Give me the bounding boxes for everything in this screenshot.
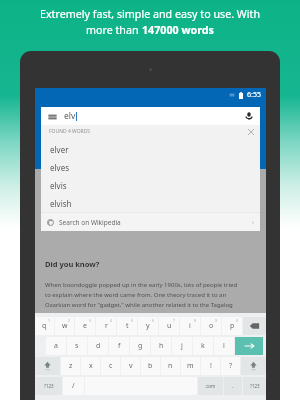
button[interactable]: g [130, 337, 150, 355]
button[interactable]: u [159, 317, 179, 335]
staticText: to explain where the word came from. One… [45, 291, 227, 299]
staticText: elvis [50, 180, 67, 191]
button[interactable]: h [151, 337, 171, 355]
button[interactable]: t [117, 317, 137, 335]
button[interactable]: / [63, 377, 84, 395]
staticText: elves [50, 162, 69, 173]
button[interactable]: z [61, 357, 80, 375]
button[interactable]: o [201, 317, 221, 335]
staticText: 8 [194, 318, 197, 323]
staticText: j [181, 341, 183, 351]
staticText: 6 [152, 318, 155, 323]
staticText: Ozarkian word for "gadget," while anothe… [45, 301, 233, 309]
button[interactable]: elves [41, 158, 260, 176]
staticText: a [54, 341, 58, 351]
button[interactable]: p [222, 317, 242, 335]
staticText: s [75, 341, 79, 351]
button[interactable]: Voice search [244, 111, 254, 121]
button[interactable]: v [121, 357, 140, 375]
button[interactable]: m [181, 357, 200, 375]
button[interactable]: k [193, 337, 213, 355]
staticText: 0 [236, 318, 239, 323]
button[interactable]: i [180, 317, 200, 335]
staticText: ?123 [250, 383, 260, 389]
button[interactable]: Shift [35, 357, 60, 375]
button[interactable]: ?123 [35, 377, 62, 395]
staticText: d [96, 341, 101, 351]
button[interactable]: q [35, 317, 54, 335]
staticText: i [189, 321, 191, 331]
button[interactable]: Backspace [243, 317, 266, 335]
staticText: Search on Wikipedia [59, 218, 121, 227]
button[interactable]: Search on Wikipedia [41, 213, 260, 231]
staticText: FOUND 4 WORDS [49, 128, 91, 135]
staticText: b [148, 361, 153, 371]
staticText: p [230, 321, 235, 331]
button[interactable]: b [141, 357, 160, 375]
staticText: k [201, 341, 205, 351]
staticText: u [167, 321, 172, 331]
button[interactable]: w [55, 317, 74, 335]
button[interactable]: Enter [235, 337, 263, 355]
staticText: r [105, 321, 108, 331]
staticText: .com [205, 383, 216, 389]
staticText: ? [229, 361, 233, 371]
staticText: elver [50, 144, 69, 155]
staticText: f [118, 341, 121, 351]
button[interactable]: a [46, 337, 66, 355]
staticText: ?123 [44, 383, 54, 389]
staticText: x [89, 361, 93, 371]
button[interactable]: ? [221, 357, 240, 375]
staticText: Extremely fast, simple and easy to use. … [40, 7, 260, 22]
button[interactable]: y [138, 317, 158, 335]
staticText: q [42, 321, 47, 331]
staticText: › [252, 218, 254, 226]
staticText: c [109, 361, 113, 371]
staticText: w [62, 321, 68, 331]
staticText: 2 [68, 318, 71, 323]
staticText: Did you know? [45, 259, 100, 269]
button[interactable]: x [81, 357, 100, 375]
button[interactable]: Clear [248, 129, 254, 135]
button[interactable]: j [172, 337, 192, 355]
button[interactable]: e [75, 317, 95, 335]
button[interactable]: ?123 [243, 377, 266, 395]
staticText: y [146, 321, 150, 331]
button[interactable]: s [67, 337, 87, 355]
button[interactable]: elvis [41, 176, 260, 194]
button[interactable]: ! [201, 357, 220, 375]
button[interactable]: .com [198, 377, 223, 395]
staticText: m [187, 361, 194, 371]
staticText: elvish [50, 198, 72, 209]
staticText: n [168, 361, 173, 371]
button[interactable]: Shift [241, 357, 266, 375]
button[interactable]: elver [41, 140, 260, 158]
staticText: g [138, 341, 143, 351]
staticText: / [72, 381, 75, 391]
staticText: h [159, 341, 164, 351]
button[interactable]: d [88, 337, 108, 355]
staticText: 5 [131, 318, 134, 323]
button[interactable]: Menu [48, 112, 57, 121]
button[interactable]: l [214, 337, 234, 355]
staticText: more than [86, 23, 142, 38]
staticText: 7 [173, 318, 176, 323]
button[interactable]: c [101, 357, 120, 375]
staticText: When boondoggle popped up in the early 1… [45, 281, 238, 289]
staticText: v [129, 361, 133, 371]
staticText: . [232, 382, 234, 390]
button[interactable]: f [109, 337, 129, 355]
staticText: 4 [110, 318, 113, 323]
button[interactable]: elvish [41, 194, 260, 212]
staticText: 6:55 [247, 90, 261, 100]
button[interactable]: n [161, 357, 180, 375]
staticText: 1 [48, 318, 51, 323]
staticText: 147000 words [142, 23, 214, 38]
staticText: ! [210, 361, 212, 371]
button[interactable]: r [96, 317, 116, 335]
staticText: o [209, 321, 214, 331]
staticText: word "bundok," meaning mountain. [45, 311, 147, 319]
staticText: e [83, 321, 87, 331]
